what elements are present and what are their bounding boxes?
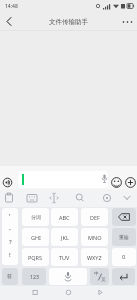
button[interactable]: WXYZ xyxy=(81,248,108,266)
staticText: 14:48 xyxy=(5,3,18,10)
button[interactable]: ABC xyxy=(51,208,78,226)
staticText: 中 xyxy=(94,271,99,277)
button[interactable]: DEF xyxy=(81,208,108,226)
button[interactable]: ' xyxy=(2,208,18,265)
button[interactable]: JKL xyxy=(51,228,78,246)
staticText: ! xyxy=(9,251,11,259)
staticText: 分词 xyxy=(31,214,41,220)
staticText: TUV xyxy=(59,254,70,261)
button[interactable] xyxy=(5,16,13,27)
staticText: JKL xyxy=(61,234,69,241)
staticText: MNO xyxy=(88,234,102,241)
staticText: 符 xyxy=(7,273,13,280)
button[interactable]: 中 xyxy=(90,268,109,285)
staticText: PQRS xyxy=(28,254,43,261)
button[interactable] xyxy=(18,171,108,188)
button[interactable]: TUV xyxy=(51,248,78,266)
button[interactable] xyxy=(111,177,122,188)
staticText: ' xyxy=(9,212,11,221)
button[interactable]: 重输 xyxy=(112,228,136,246)
button[interactable] xyxy=(112,268,135,285)
button[interactable]: 123 xyxy=(22,268,46,285)
staticText: 文件传输助手 xyxy=(49,18,88,26)
staticText: ABC xyxy=(59,214,70,221)
button[interactable] xyxy=(121,18,134,26)
staticText: 123 xyxy=(30,273,39,280)
button[interactable] xyxy=(125,177,136,188)
staticText: DEF xyxy=(90,214,100,221)
staticText: 重输 xyxy=(119,234,129,240)
button[interactable] xyxy=(49,268,87,285)
button[interactable] xyxy=(3,178,13,188)
staticText: ? xyxy=(9,238,12,246)
staticText: · xyxy=(9,224,12,234)
staticText: 英 xyxy=(101,277,106,283)
staticText: 0 xyxy=(122,253,126,261)
button[interactable]: PQRS xyxy=(22,248,49,266)
button[interactable]: 0 xyxy=(112,248,136,266)
button[interactable] xyxy=(112,208,136,226)
staticText: GHI xyxy=(31,234,41,241)
staticText: WXYZ xyxy=(87,254,102,261)
button[interactable]: 符 xyxy=(2,268,18,285)
button[interactable]: 分词 xyxy=(22,208,49,226)
button[interactable]: GHI xyxy=(22,228,49,246)
button[interactable]: MNO xyxy=(81,228,108,246)
